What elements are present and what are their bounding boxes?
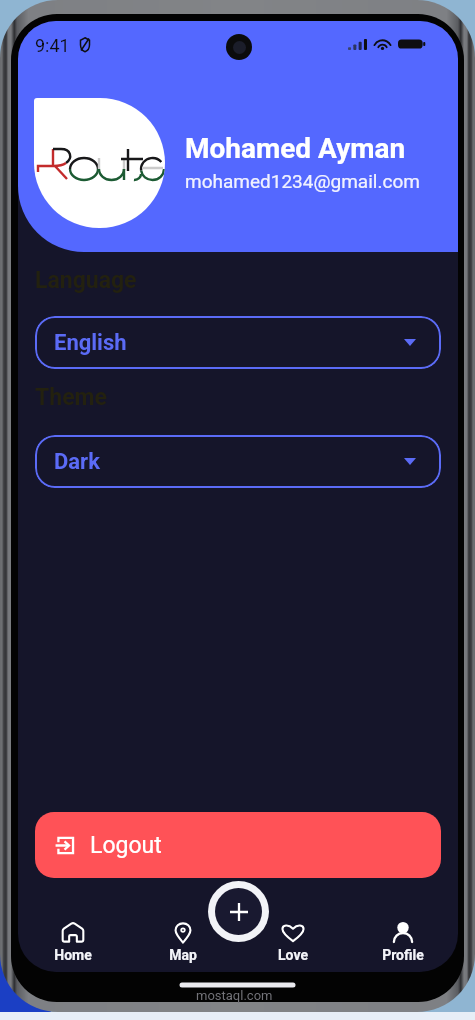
staticText: English: [54, 330, 127, 356]
button[interactable]: Profile: [348, 900, 458, 972]
staticText: 9:41: [35, 35, 70, 56]
staticText: Theme: [35, 384, 107, 411]
staticText: Mohamed Ayman: [185, 132, 406, 165]
staticText: Logout: [90, 832, 162, 859]
button[interactable]: Map: [128, 900, 238, 972]
staticText: Map: [169, 947, 197, 963]
staticText: Love: [278, 947, 308, 963]
button[interactable]: Home: [18, 900, 128, 972]
button[interactable]: Logout: [35, 812, 441, 878]
button[interactable]: Dark: [35, 435, 441, 488]
staticText: mohamed1234@gmail.com: [185, 170, 420, 192]
button[interactable]: Add: [208, 881, 269, 942]
staticText: Dark: [54, 449, 100, 475]
button[interactable]: Love: [238, 900, 348, 972]
staticText: Language: [35, 267, 137, 294]
staticText: Profile: [382, 947, 424, 963]
staticText: mostaql.com: [196, 988, 273, 1003]
button[interactable]: English: [35, 316, 441, 369]
staticText: Home: [54, 947, 92, 963]
